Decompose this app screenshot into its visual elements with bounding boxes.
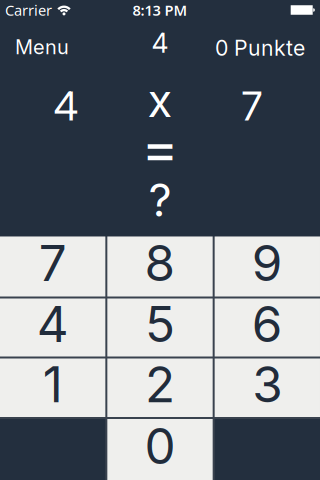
button[interactable]: 1	[0, 358, 105, 417]
staticText: 9	[252, 233, 283, 293]
button[interactable]: 5	[107, 298, 213, 356]
button[interactable]: 3	[215, 358, 320, 417]
staticText: 6	[252, 294, 283, 354]
button[interactable]: 4	[0, 298, 105, 356]
staticText: 4	[151, 27, 168, 59]
staticText: 7	[39, 233, 67, 293]
staticText: 3	[252, 354, 282, 414]
button[interactable]: 2	[107, 358, 213, 417]
staticText: 7	[241, 82, 262, 130]
button[interactable]: 8	[107, 236, 213, 296]
button[interactable]: 6	[215, 298, 320, 356]
button[interactable]: 7	[0, 236, 105, 296]
button[interactable]: 9	[215, 236, 320, 296]
staticText: 1	[43, 354, 63, 414]
staticText: 0 Punkte	[215, 35, 305, 61]
button[interactable]: Menu	[15, 35, 69, 59]
staticText: Menu	[15, 35, 69, 59]
staticText: 5	[145, 294, 175, 354]
staticText: 8:13 PM	[132, 0, 187, 20]
staticText: 4	[53, 82, 78, 130]
staticText: x	[147, 73, 172, 128]
staticText: 4	[37, 294, 69, 354]
button[interactable]: 0	[107, 419, 213, 480]
staticText: Carrier	[5, 0, 52, 20]
staticText: 0	[144, 416, 175, 476]
staticText: ?	[148, 173, 171, 227]
staticText: =	[141, 114, 178, 182]
staticText: 8	[144, 233, 175, 293]
staticText: 2	[145, 354, 175, 414]
